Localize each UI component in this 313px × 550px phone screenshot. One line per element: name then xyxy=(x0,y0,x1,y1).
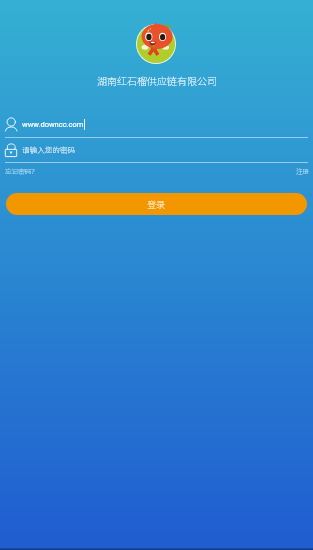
button[interactable]: 登录 xyxy=(6,193,307,215)
staticText: 湖南红石榴供应链有限公司 xyxy=(97,73,217,87)
button[interactable]: 忘记密码？ xyxy=(5,166,38,176)
staticText: www.downcc.com xyxy=(22,120,84,129)
staticText: 请输入您的密码 xyxy=(22,144,76,155)
other: Account xyxy=(5,117,17,131)
staticText: 登录 xyxy=(147,198,166,211)
other: Password xyxy=(5,143,17,157)
button[interactable]: 注册 xyxy=(296,166,310,176)
